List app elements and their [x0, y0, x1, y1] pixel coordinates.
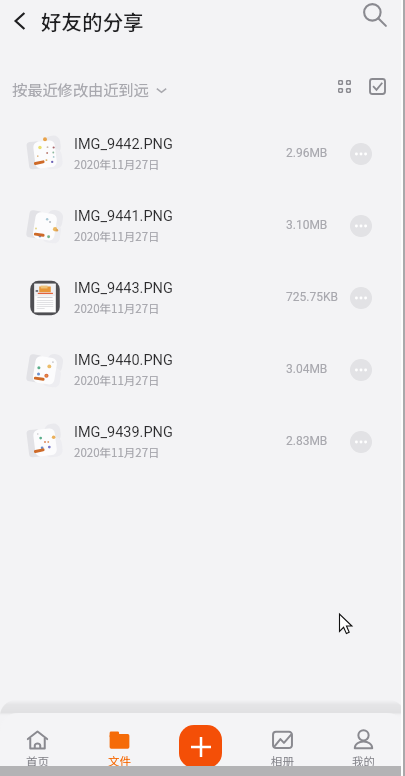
button[interactable]: Grid view — [330, 72, 359, 101]
button[interactable]: 我的 — [331, 718, 395, 776]
button[interactable]: IMG_9440.PNG — [0, 334, 405, 406]
button[interactable]: 首页 — [5, 718, 69, 776]
staticText: IMG_9441.PNG — [74, 208, 173, 225]
button[interactable]: 按最近修改由近到远 — [12, 78, 168, 100]
button[interactable]: IMG_9439.PNG — [0, 406, 405, 478]
button[interactable]: More options — [350, 215, 372, 237]
staticText: 2020年11月27日 — [74, 228, 160, 245]
button[interactable]: More options — [350, 359, 372, 381]
staticText: 725.75KB — [286, 290, 338, 304]
staticText: 按最近修改由近到远 — [12, 78, 149, 100]
staticText: IMG_9440.PNG — [74, 352, 173, 369]
button[interactable]: Add new item — [179, 725, 222, 768]
button[interactable]: More options — [350, 143, 372, 165]
button[interactable]: IMG_9442.PNG — [0, 118, 405, 190]
button[interactable]: IMG_9443.PNG — [0, 262, 405, 334]
staticText: 我的 — [352, 753, 375, 770]
button[interactable]: IMG_9441.PNG — [0, 190, 405, 262]
button[interactable]: Back — [3, 4, 37, 38]
staticText: 文件 — [108, 753, 131, 770]
staticText: IMG_9442.PNG — [74, 136, 173, 153]
staticText: 2020年11月27日 — [74, 300, 160, 317]
staticText: 2.83MB — [286, 434, 328, 448]
button[interactable]: 文件 — [87, 718, 151, 776]
staticText: 2.96MB — [286, 146, 328, 160]
staticText: IMG_9443.PNG — [74, 280, 173, 297]
staticText: 好友的分享 — [41, 6, 144, 36]
button[interactable]: 相册 — [250, 718, 314, 776]
staticText: IMG_9439.PNG — [74, 424, 173, 441]
button[interactable]: Select items — [363, 72, 392, 101]
staticText: 3.04MB — [286, 362, 328, 376]
button[interactable]: More options — [350, 287, 372, 309]
button[interactable]: Search — [358, 0, 393, 33]
staticText: 2020年11月27日 — [74, 444, 160, 461]
staticText: 首页 — [26, 753, 49, 770]
button[interactable]: More options — [350, 431, 372, 453]
staticText: 2020年11月27日 — [74, 372, 160, 389]
staticText: 3.10MB — [286, 218, 328, 232]
staticText: 2020年11月27日 — [74, 156, 160, 173]
staticText: 相册 — [271, 753, 294, 770]
